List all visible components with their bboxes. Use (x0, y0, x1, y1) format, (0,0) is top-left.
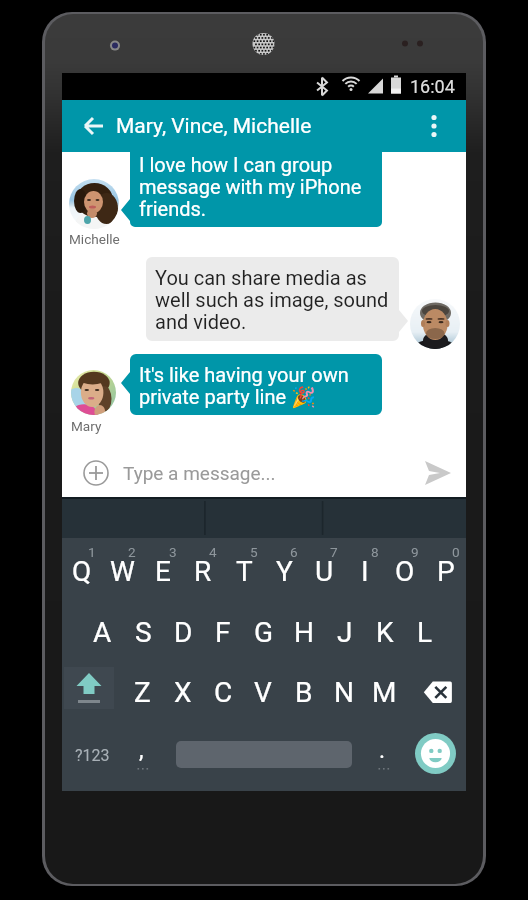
button[interactable]: C (203, 660, 243, 720)
staticText: 5 (250, 544, 258, 560)
button[interactable] (130, 152, 382, 227)
staticText: T (236, 555, 253, 588)
button[interactable]: Shift (64, 667, 114, 709)
button[interactable]: V (243, 660, 283, 720)
staticText: Michelle (69, 231, 120, 247)
staticText: A (93, 616, 112, 649)
button[interactable]: 6 (264, 538, 304, 600)
staticText: J (337, 616, 353, 649)
staticText: X (174, 676, 192, 709)
button[interactable] (130, 354, 382, 415)
staticText: V (254, 676, 272, 709)
staticText: 2 (128, 544, 136, 560)
button[interactable]: 5 (224, 538, 264, 600)
staticText: Mary, Vince, Michelle (116, 114, 312, 139)
button[interactable]: K (365, 600, 405, 660)
staticText: Y (276, 555, 293, 588)
staticText: You can share media as well such as imag… (155, 266, 389, 334)
staticText: , (139, 737, 144, 764)
button[interactable]: Emoji (415, 733, 456, 774)
staticText: Type a message... (123, 462, 276, 484)
button[interactable]: Add attachment (76, 453, 116, 493)
staticText: 0 (452, 544, 460, 560)
staticText: K (376, 616, 394, 649)
button[interactable]: D (163, 600, 203, 660)
staticText: Mary (71, 418, 102, 434)
staticText: D (174, 616, 193, 649)
staticText: 4 (209, 544, 217, 560)
button[interactable]: 0 (426, 538, 466, 600)
staticText: P (437, 555, 455, 588)
staticText: G (254, 616, 274, 649)
button[interactable]: M (364, 660, 404, 720)
staticText: L (417, 616, 433, 649)
staticText: 6 (290, 544, 298, 560)
button[interactable]: 4 (183, 538, 223, 600)
staticText: B (295, 676, 313, 709)
staticText: S (135, 616, 152, 649)
button[interactable]: A (82, 600, 122, 660)
button[interactable]: X (163, 660, 203, 720)
button[interactable]: 3 (143, 538, 183, 600)
button[interactable]: ?123 (64, 726, 120, 784)
button[interactable]: 7 (304, 538, 344, 600)
button[interactable]: Z (122, 660, 162, 720)
staticText: Q (72, 555, 92, 588)
button[interactable]: 8 (345, 538, 385, 600)
staticText: ?123 (75, 746, 110, 765)
staticText: 9 (411, 544, 419, 560)
button[interactable]: H (284, 600, 324, 660)
staticText: 1 (88, 544, 96, 560)
button[interactable]: F (203, 600, 243, 660)
staticText: C (214, 676, 233, 709)
button[interactable]: S (123, 600, 163, 660)
button[interactable]: Back (70, 102, 118, 150)
button[interactable] (146, 257, 399, 341)
button[interactable]: Backspace (416, 674, 460, 710)
staticText: M (372, 676, 397, 709)
button[interactable]: L (405, 600, 445, 660)
staticText: It's like having your own private party … (139, 363, 349, 409)
staticText: O (395, 555, 415, 588)
button[interactable]: G (244, 600, 284, 660)
button[interactable]: 2 (102, 538, 142, 600)
staticText: 7 (330, 544, 338, 560)
button[interactable]: Send (418, 453, 458, 493)
button[interactable]: . (362, 726, 402, 784)
staticText: 3 (169, 544, 177, 560)
staticText: 8 (371, 544, 379, 560)
staticText: W (110, 555, 135, 588)
button[interactable]: J (325, 600, 365, 660)
staticText: Z (134, 676, 151, 709)
staticText: . (379, 737, 386, 764)
button[interactable]: More options (410, 102, 458, 150)
button[interactable]: N (324, 660, 364, 720)
staticText: N (334, 676, 354, 709)
staticText: I (361, 555, 369, 588)
button[interactable]: 1 (62, 538, 102, 600)
button[interactable]: B (284, 660, 324, 720)
button[interactable]: , (121, 726, 161, 784)
staticText: F (215, 616, 231, 649)
staticText: I love how I can group message with my i… (139, 153, 362, 221)
staticText: 16:04 (410, 76, 455, 97)
staticText: H (294, 616, 314, 649)
staticText: R (194, 555, 212, 588)
staticText: E (155, 555, 171, 588)
staticText: U (315, 555, 334, 588)
button[interactable]: 9 (385, 538, 425, 600)
